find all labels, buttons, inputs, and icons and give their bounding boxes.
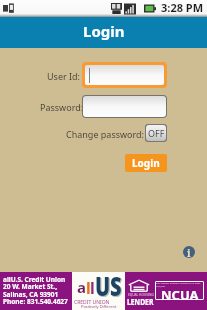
staticText: Login (132, 156, 160, 170)
staticText: Positively Different (81, 304, 117, 309)
staticText: l (90, 277, 95, 299)
staticText: Login (83, 21, 125, 41)
staticText: CREDIT UNION (74, 299, 110, 306)
staticText: Salinas, CA 93901 (3, 290, 59, 299)
staticText: 20 W. Market St., (3, 282, 58, 291)
button[interactable] (83, 96, 166, 117)
staticText: l (86, 277, 91, 299)
staticText: Password: (40, 101, 84, 113)
button[interactable] (85, 65, 164, 85)
staticText: NCUA (161, 286, 199, 299)
staticText: Phone: 831.540.4627 (3, 297, 68, 306)
staticText: Your savings federally insured to at lea… (155, 281, 204, 287)
staticText: EQUAL HOUSING (128, 293, 154, 297)
staticText: i (187, 246, 191, 258)
staticText: Change password: (66, 128, 145, 140)
button[interactable]: Information (183, 246, 195, 258)
staticText: 3:28 PM (161, 0, 204, 15)
staticText: a (77, 277, 86, 297)
staticText: LENDER (127, 296, 153, 308)
staticText: US (95, 267, 122, 304)
button[interactable]: Login (125, 154, 167, 172)
staticText: OFF (148, 127, 165, 139)
staticText: US (96, 268, 123, 305)
staticText: User Id: (47, 70, 81, 82)
staticText: allU.S. Credit Union (3, 275, 66, 284)
button[interactable]: OFF (146, 125, 166, 141)
